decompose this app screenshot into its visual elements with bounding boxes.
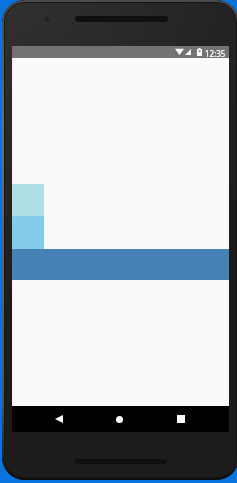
button[interactable]: Recent apps [171,409,191,429]
staticText: 12:35 [205,48,226,59]
button[interactable]: Back [49,409,69,429]
button[interactable]: Home [109,409,129,429]
